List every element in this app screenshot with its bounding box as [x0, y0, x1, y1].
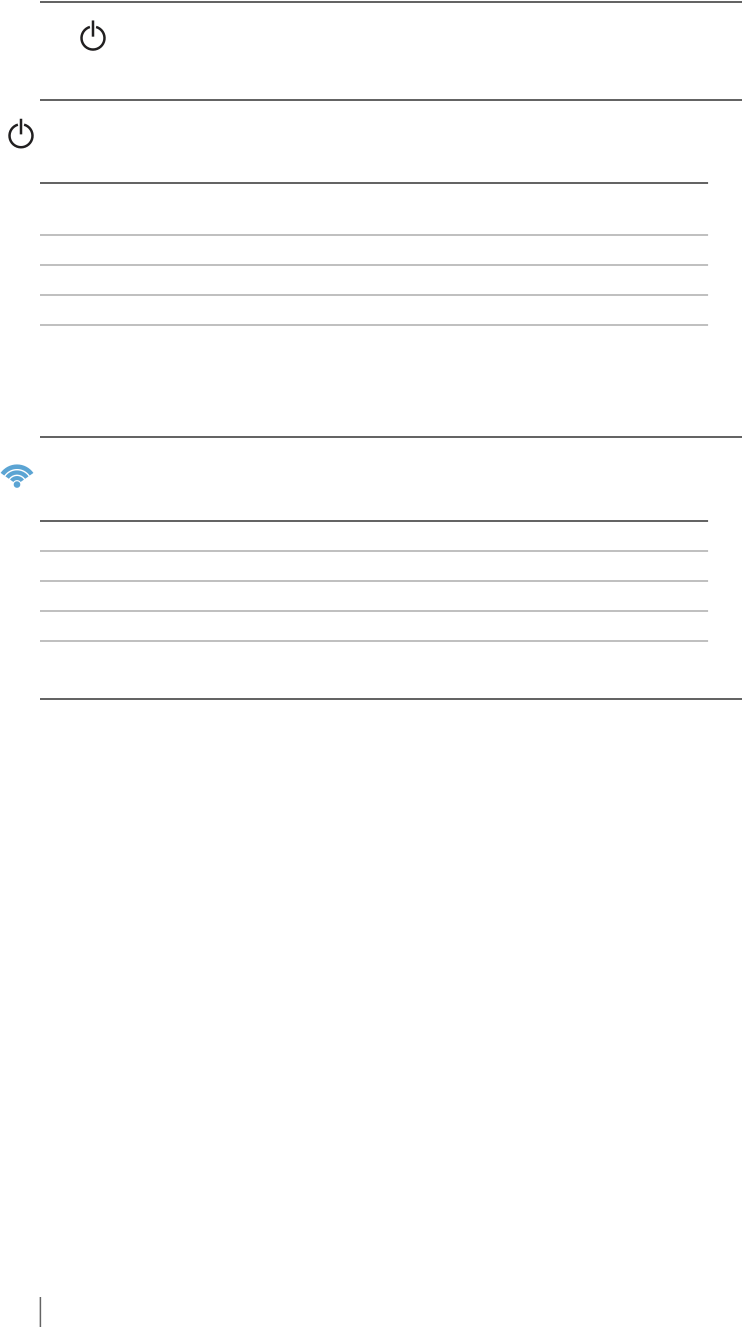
button[interactable]: Row 3	[0, 266, 742, 296]
button[interactable]: Row 4	[0, 296, 742, 326]
button[interactable]: Wi-Fi	[0, 456, 38, 496]
button[interactable]: Row 2	[0, 552, 742, 582]
button[interactable]: Row 2	[0, 236, 742, 266]
button[interactable]: Row 3	[0, 582, 742, 612]
button[interactable]: Row 1	[0, 184, 742, 236]
button[interactable]: Row 4	[0, 612, 742, 642]
button[interactable]: Row 1	[0, 522, 742, 552]
button[interactable]: Power	[2, 111, 40, 155]
button[interactable]: Power	[71, 13, 115, 57]
